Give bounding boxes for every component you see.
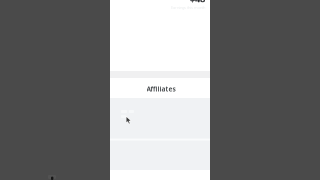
staticText: Affiliates bbox=[146, 85, 175, 93]
staticText: $48 bbox=[190, 0, 205, 5]
staticText: Earnings this month bbox=[171, 5, 205, 10]
button[interactable]: Affiliate entry bbox=[121, 110, 127, 118]
button[interactable]: $48 bbox=[171, 0, 205, 10]
